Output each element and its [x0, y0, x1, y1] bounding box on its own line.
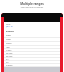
staticText: Q2 — [6, 61, 9, 63]
button[interactable]: 30 days — [4, 52, 60, 55]
button[interactable]: Month — [4, 42, 60, 46]
staticText: Week — [6, 38, 11, 40]
button[interactable]: 90 days — [4, 55, 60, 58]
staticText: 30 days — [6, 52, 13, 54]
staticText: Today — [6, 34, 11, 36]
staticText: Month — [6, 42, 12, 44]
button[interactable]: Year — [4, 46, 60, 49]
staticText: Multiple ranges — [0, 2, 64, 6]
staticText: Select two dates to compare — [0, 6, 64, 8]
staticText: Jan 1-31 — [6, 25, 14, 28]
staticText: Range — [6, 23, 11, 25]
staticText: Custom — [6, 64, 13, 66]
button[interactable]: Week — [4, 38, 60, 42]
button[interactable]: 7 days — [4, 49, 60, 52]
staticText: Ranges — [6, 30, 14, 33]
staticText: 7 days — [6, 49, 12, 51]
button[interactable]: Custom — [4, 64, 60, 67]
button[interactable]: Q2 — [4, 61, 60, 64]
staticText: Year — [6, 46, 10, 48]
staticText: 90 days — [6, 55, 13, 57]
staticText: Q1 — [6, 58, 9, 60]
button[interactable]: Q1 — [4, 58, 60, 61]
button[interactable]: Today — [4, 34, 60, 38]
